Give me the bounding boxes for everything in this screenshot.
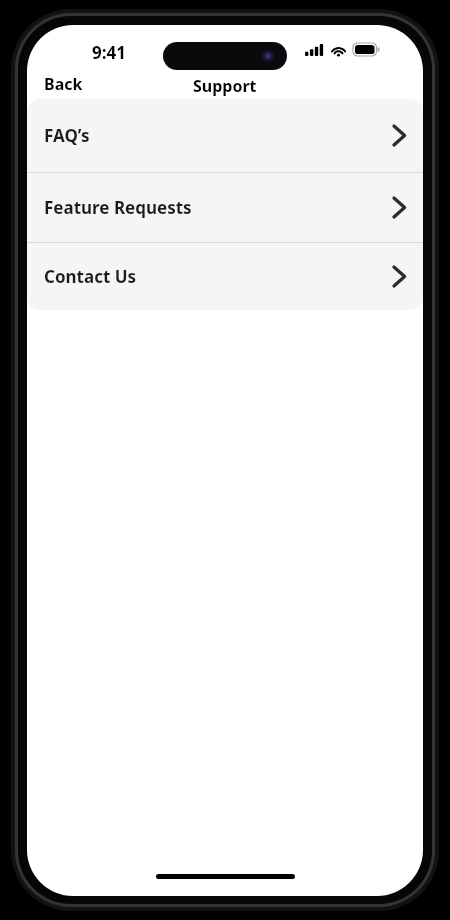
other: FAQ’s [392, 124, 406, 147]
button[interactable]: Contact Us [27, 243, 423, 310]
button[interactable]: Feature Requests [27, 173, 423, 242]
staticText: Back [44, 73, 83, 95]
button[interactable]: FAQ’s [27, 99, 423, 172]
other: Feature Requests [392, 196, 406, 219]
other: Contact Us [392, 265, 406, 288]
staticText: Feature Requests [44, 196, 192, 219]
staticText: Contact Us [44, 265, 137, 288]
button[interactable]: Back [35, 70, 111, 98]
staticText: 9:41 [92, 41, 126, 64]
staticText: FAQ’s [44, 124, 90, 147]
staticText: Support [193, 75, 257, 97]
